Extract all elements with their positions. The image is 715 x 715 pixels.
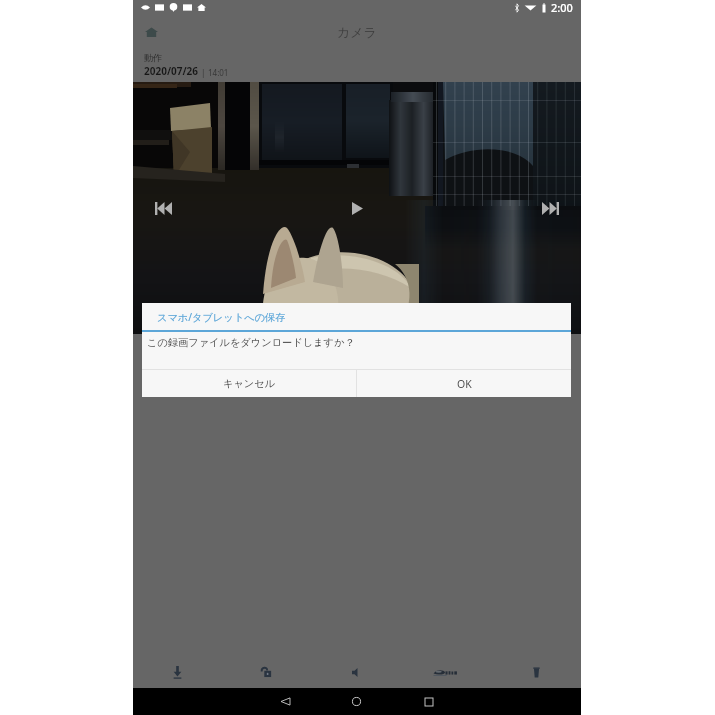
button[interactable]: Back: [272, 688, 299, 715]
button[interactable]: Delete: [491, 656, 581, 688]
button[interactable]: Next: [533, 191, 568, 226]
button[interactable]: Drive: [401, 656, 491, 688]
staticText: この録画ファイルをダウンロードしますか？: [147, 336, 355, 349]
staticText: 動作: [144, 52, 162, 63]
staticText: 2:00: [551, 0, 573, 15]
button[interactable]: Mute: [311, 656, 401, 688]
staticText: キャンセル: [223, 377, 276, 390]
staticText: OK: [457, 377, 472, 391]
button[interactable]: Play: [340, 191, 375, 226]
button[interactable]: キャンセル: [142, 370, 356, 397]
button[interactable]: Home: [343, 688, 370, 715]
staticText: カメラ: [337, 24, 377, 40]
button[interactable]: OK: [357, 370, 571, 397]
staticText: |: [199, 67, 208, 78]
staticText: 2020/07/26: [144, 64, 199, 78]
button[interactable]: Recents: [415, 688, 442, 715]
button[interactable]: Snapshot: [222, 656, 311, 688]
staticText: スマホ/タブレットへの保存: [157, 310, 286, 324]
button[interactable]: Download: [133, 656, 222, 688]
staticText: 14:01: [208, 67, 229, 78]
button[interactable]: Home: [139, 20, 163, 44]
button[interactable]: Previous: [146, 191, 181, 226]
